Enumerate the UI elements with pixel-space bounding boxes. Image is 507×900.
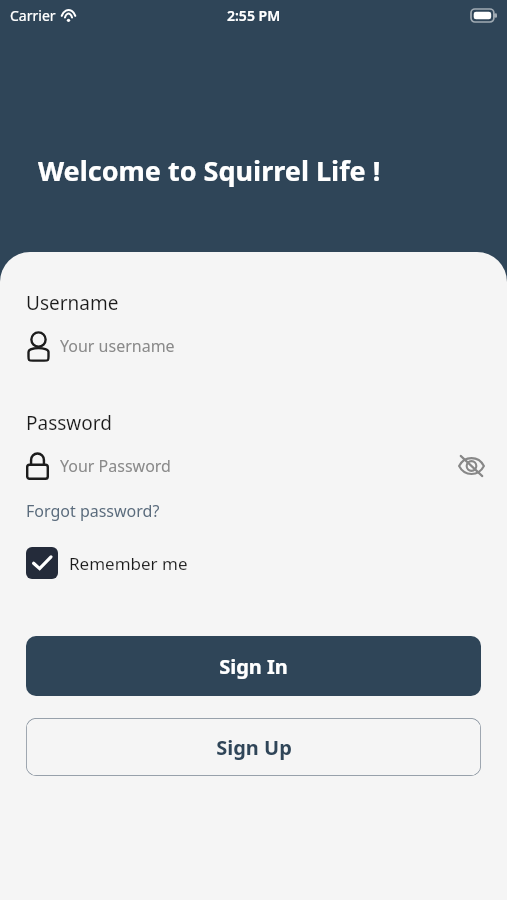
staticText: Remember me xyxy=(69,552,188,575)
button[interactable]: Sign Up xyxy=(26,718,481,776)
staticText: Password xyxy=(26,410,112,436)
button[interactable]: Remember me xyxy=(0,544,198,582)
staticText: 2:55 PM xyxy=(227,6,281,25)
button[interactable]: Forgot password? xyxy=(0,498,168,524)
staticText: Your Password xyxy=(60,455,171,477)
button[interactable]: Show password xyxy=(449,448,493,484)
staticText: Sign Up xyxy=(216,734,292,761)
staticText: Your username xyxy=(60,335,175,357)
staticText: Username xyxy=(26,290,119,316)
staticText: Carrier xyxy=(10,6,56,25)
button[interactable]: Your username xyxy=(0,328,507,364)
button[interactable]: Sign In xyxy=(26,636,481,696)
staticText: Welcome to Squirrel Life ! xyxy=(38,152,381,189)
button[interactable]: Your Password xyxy=(0,448,449,484)
staticText: Forgot password? xyxy=(26,500,160,522)
staticText: Sign In xyxy=(219,653,288,680)
